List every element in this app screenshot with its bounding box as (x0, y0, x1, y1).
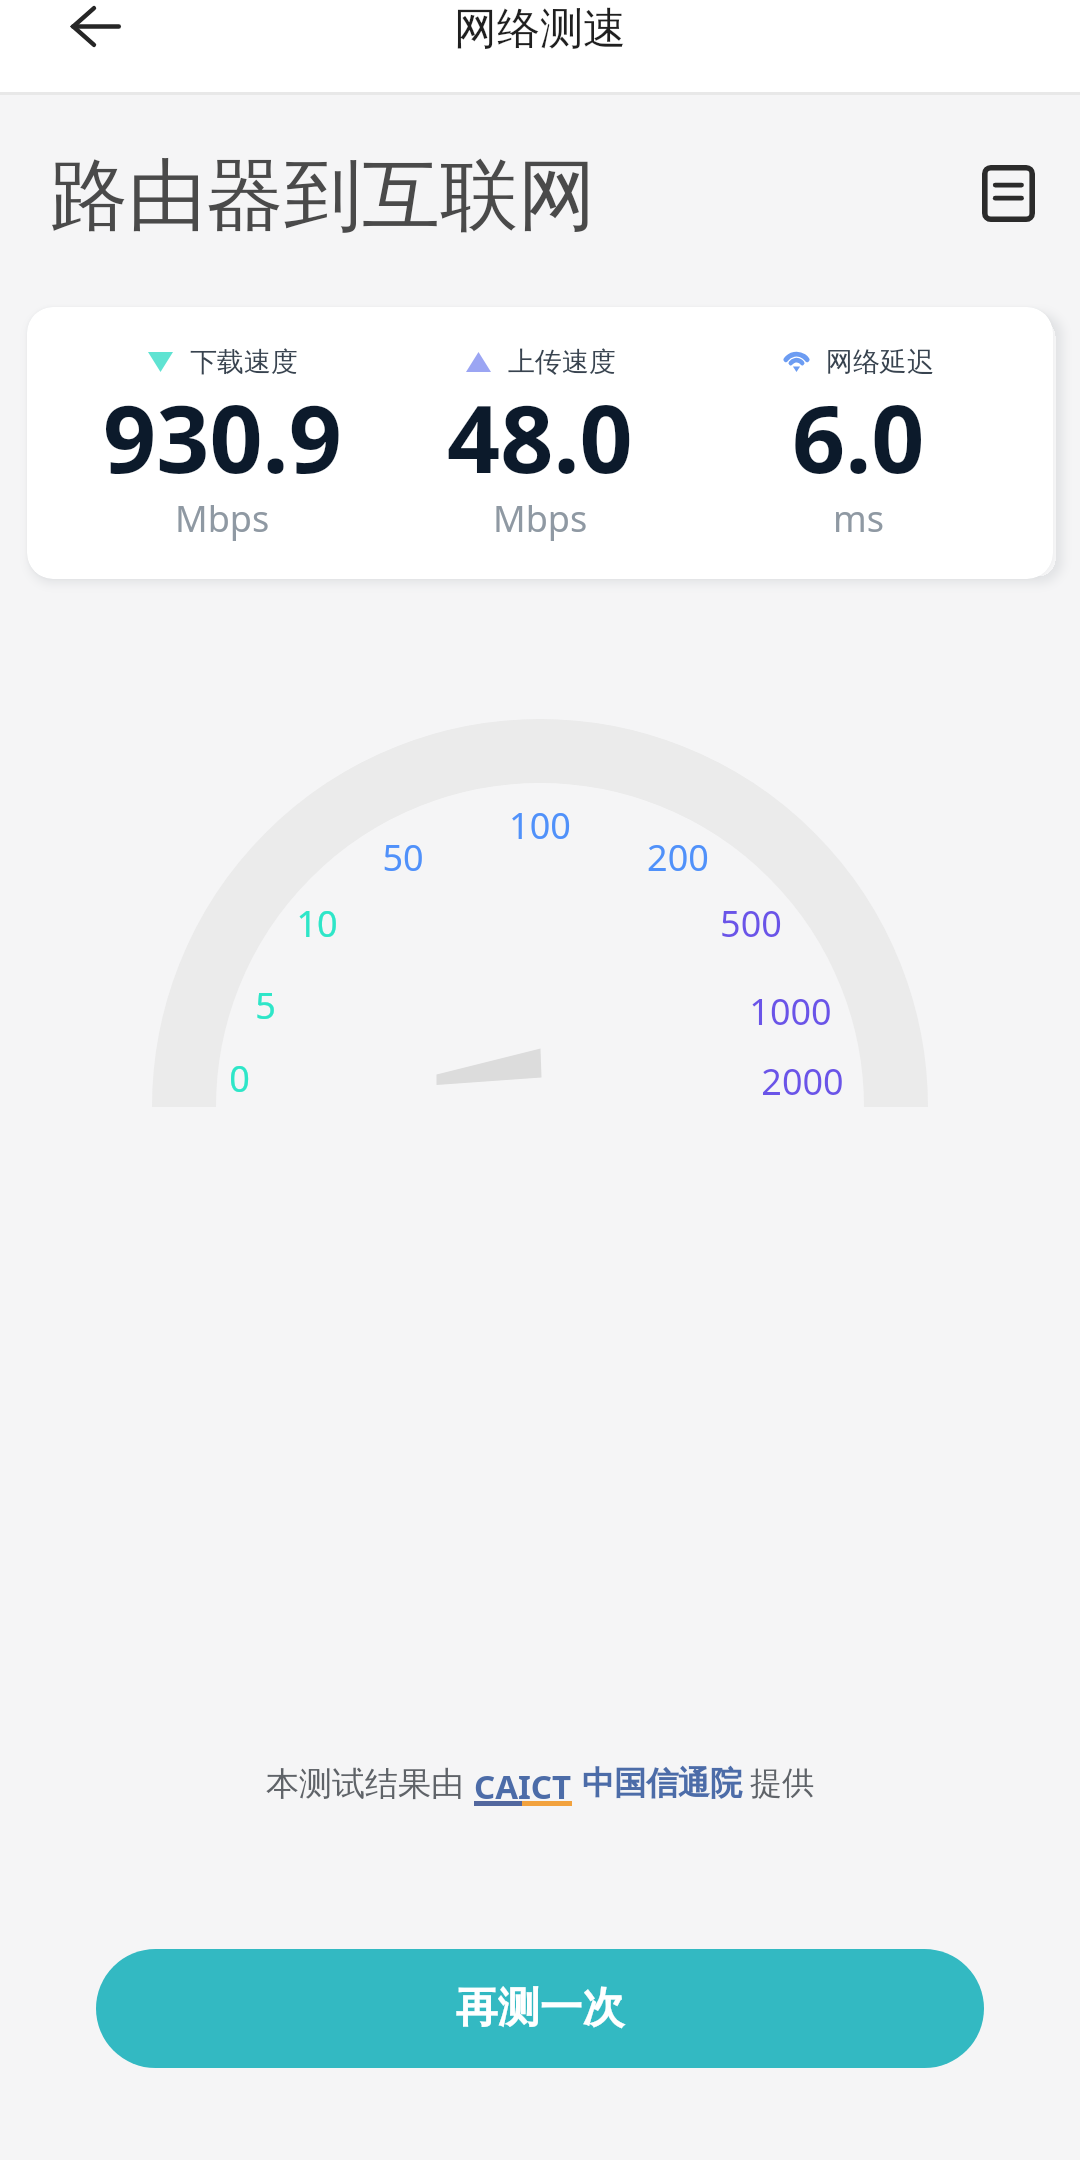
staticText: 0 (229, 1054, 250, 1103)
staticText: 提供 (750, 1763, 814, 1803)
staticText: 上传速度 (508, 345, 616, 379)
button[interactable]: Test records (960, 155, 1056, 231)
staticText: 50 (382, 833, 424, 882)
staticText: 930.9 (103, 374, 342, 501)
staticText: 200 (647, 833, 709, 882)
button[interactable]: 再测一次 (96, 1949, 984, 2068)
staticText: 网络延迟 (826, 345, 934, 379)
staticText: Mbps (493, 494, 588, 543)
staticText: ms (833, 494, 884, 543)
staticText: 10 (296, 899, 338, 948)
staticText: Mbps (175, 494, 270, 543)
staticText: 中国信通院 (582, 1763, 742, 1803)
staticText: 再测一次 (456, 1982, 624, 2035)
staticText: 100 (509, 801, 571, 850)
staticText: 6.0 (792, 374, 925, 501)
staticText: 1000 (749, 987, 832, 1036)
staticText: 路由器到互联网 (50, 147, 596, 245)
staticText: 网络测速 (454, 2, 626, 56)
staticText: 下载速度 (190, 345, 298, 379)
staticText: 48.0 (447, 374, 633, 501)
staticText: 2000 (761, 1057, 844, 1106)
staticText: 本测试结果由 (266, 1763, 464, 1805)
staticText: 500 (720, 899, 782, 948)
staticText: 5 (255, 981, 276, 1030)
button[interactable]: Back (56, 0, 136, 66)
staticText: CAICT (474, 1764, 572, 1809)
